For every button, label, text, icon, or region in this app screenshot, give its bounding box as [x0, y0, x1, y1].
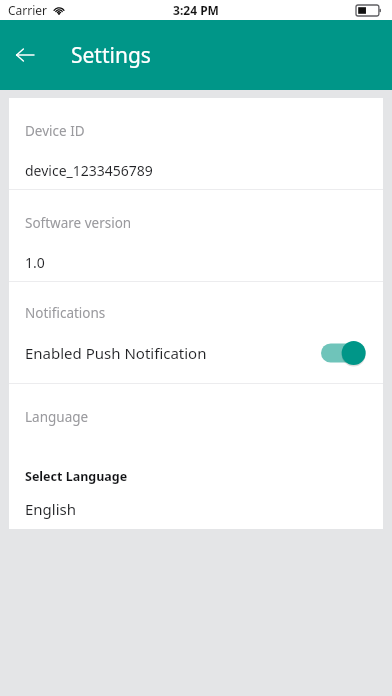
staticText: Select Language [25, 468, 128, 485]
staticText: Enabled Push Notification [25, 343, 207, 363]
button[interactable]: Language [9, 384, 383, 529]
button[interactable]: Software version [9, 190, 383, 281]
staticText: Device ID [25, 122, 85, 140]
staticText: Settings [71, 41, 151, 70]
staticText: Notifications [25, 304, 106, 322]
button[interactable]: Notifications [9, 282, 383, 383]
button[interactable]: Back [6, 36, 44, 74]
button[interactable]: Device ID [9, 98, 383, 189]
staticText: Carrier [8, 2, 48, 18]
staticText: Language [25, 408, 89, 426]
staticText: device_1233456789 [25, 161, 153, 180]
button[interactable]: Enabled Push Notification toggle [321, 341, 367, 365]
staticText: 1.0 [25, 253, 45, 272]
staticText: 3:24 PM [173, 2, 219, 18]
staticText: English [25, 499, 77, 519]
staticText: Software version [25, 214, 132, 232]
